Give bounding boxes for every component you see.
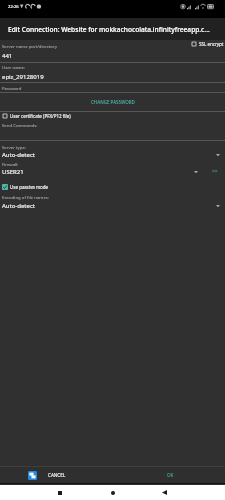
staticText: Edit Connection: Website for mokkachocol… [8,25,210,34]
staticText: 22:26 [8,4,19,10]
staticText: User name: [2,64,26,70]
staticText: Server name port/directory [2,43,57,49]
button[interactable]: User certificate (PFX/P12 file) [2,113,71,119]
staticText: Send Commands: [2,122,38,128]
staticText: User certificate (PFX/P12 file) [10,113,71,119]
staticText: Auto-detect [2,151,35,159]
staticText: SSL encrypt [199,41,224,47]
button[interactable]: SSL encrypt [191,41,224,47]
button[interactable]: CANCEL [44,466,70,484]
staticText: epiz_29128019 [2,73,44,81]
staticText: Password [2,85,22,91]
staticText: Firewall: [2,161,19,167]
staticText: USER21 [2,168,24,176]
staticText: Use passive mode [10,184,49,190]
staticText: OK [167,472,174,478]
staticText: 441 [2,52,13,60]
staticText: Auto-detect [2,202,35,210]
staticText: Encoding of file names: [2,194,50,200]
button[interactable]: Auto-detect [0,150,225,159]
button[interactable]: CHANGE PASSWORD [87,96,139,108]
button[interactable]: Multi window [28,471,37,480]
staticText: CANCEL [48,472,66,478]
button[interactable]: Back [158,486,171,499]
button[interactable]: Use passive mode [2,184,49,190]
button[interactable]: Auto-detect [0,201,225,210]
button[interactable]: Recents [53,486,66,499]
button[interactable]: Firewall dropdown [194,170,198,174]
staticText: Server type: [2,144,27,150]
button[interactable]: >> [212,168,218,175]
button[interactable]: OK [157,466,183,484]
button[interactable]: Home [106,486,119,499]
